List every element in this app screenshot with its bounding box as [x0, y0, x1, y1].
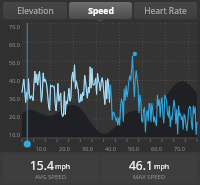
- button[interactable]: Speed: [69, 2, 132, 19]
- button[interactable]: 46.1: [101, 154, 197, 183]
- staticText: 30.0: [76, 145, 99, 152]
- staticText: 70.0: [9, 23, 20, 30]
- staticText: 60.0: [145, 145, 168, 152]
- button[interactable]: 15.4: [3, 154, 98, 183]
- staticText: Elevation: [17, 5, 54, 17]
- staticText: 70.0: [168, 145, 191, 152]
- staticText: MAX SPEED: [133, 173, 166, 181]
- staticText: 60.0: [9, 41, 20, 48]
- staticText: Heart Rate: [144, 5, 187, 17]
- staticText: AVG SPEED: [35, 173, 67, 181]
- staticText: 30.0: [9, 95, 20, 102]
- staticText: 15.4: [30, 157, 54, 173]
- button[interactable]: Heart Rate: [134, 2, 197, 19]
- staticText: Speed: [88, 5, 114, 17]
- staticText: 50.0: [122, 145, 145, 152]
- button[interactable]: Elevation: [3, 2, 67, 19]
- staticText: 46.1: [129, 157, 153, 173]
- staticText: 40.0: [9, 77, 20, 84]
- staticText: mph: [55, 162, 71, 172]
- staticText: 50.0: [9, 59, 20, 66]
- staticText: mph: [154, 162, 170, 172]
- staticText: 20.0: [53, 145, 76, 152]
- staticText: 10.0: [29, 145, 53, 152]
- staticText: 10.0: [9, 131, 20, 138]
- staticText: 40.0: [99, 145, 122, 152]
- staticText: 20.0: [9, 113, 20, 120]
